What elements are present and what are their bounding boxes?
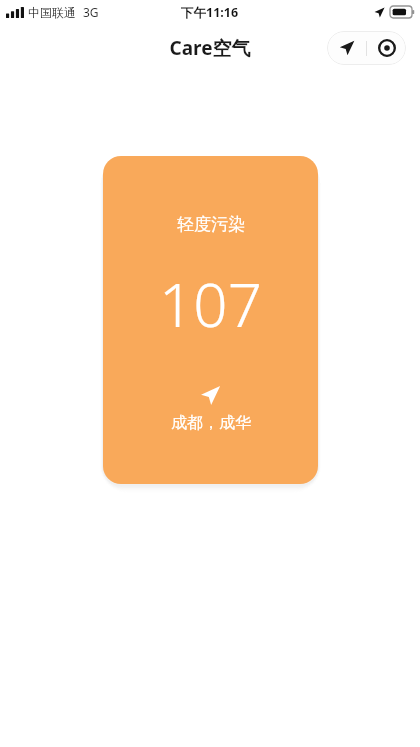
- button[interactable]: Locate me: [327, 31, 366, 65]
- staticText: Care空气: [169, 35, 251, 61]
- staticText: 轻度污染: [177, 214, 245, 235]
- staticText: 3G: [83, 4, 99, 20]
- button[interactable]: 轻度污染: [103, 156, 318, 484]
- button[interactable]: Current location: [367, 31, 406, 65]
- staticText: 中国联通: [28, 5, 76, 20]
- staticText: 107: [159, 263, 262, 345]
- staticText: 成都，成华: [171, 413, 251, 433]
- staticText: 下午11:16: [181, 4, 239, 21]
